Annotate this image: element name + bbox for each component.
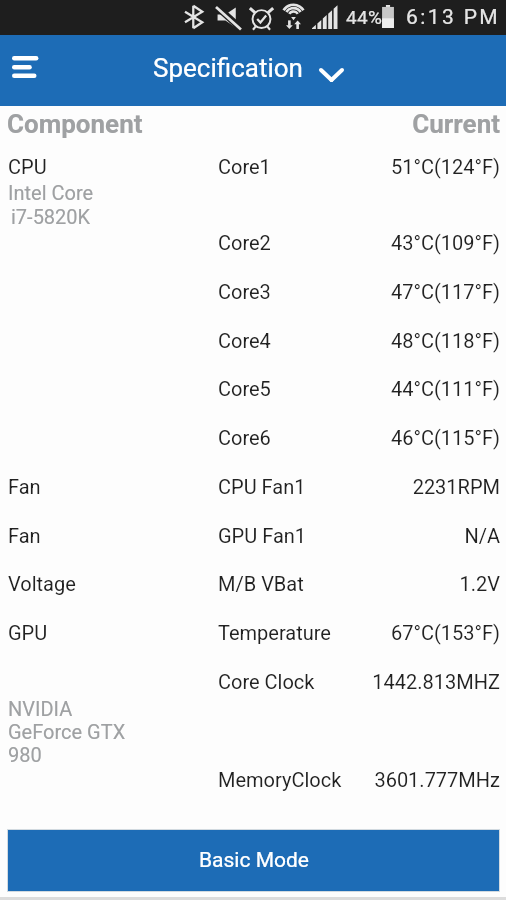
staticText: CPU Fan1 [218, 475, 306, 498]
staticText: Component [7, 109, 143, 139]
staticText: GPU Fan1 [218, 524, 307, 547]
staticText: 1.2V [459, 572, 500, 595]
staticText: Core Clock [218, 670, 315, 693]
staticText: Core2 [218, 231, 271, 254]
staticText: Fan [8, 524, 41, 547]
staticText: GeForce GTX [8, 720, 126, 743]
staticText: Core5 [218, 377, 271, 400]
staticText: 48°C(118°F) [390, 329, 500, 352]
staticText: Core3 [218, 280, 271, 303]
staticText: M/B VBat [218, 572, 304, 595]
staticText: Basic Mode [199, 848, 309, 873]
staticText: 44°C(111°F) [390, 377, 500, 400]
staticText: 43°C(109°F) [390, 231, 500, 254]
staticText: 51°C(124°F) [390, 155, 500, 178]
staticText: 6:13 PM [406, 5, 501, 30]
staticText: MemoryClock [218, 768, 342, 791]
staticText: Specification [153, 53, 303, 83]
staticText: 1442.813MHZ [372, 670, 500, 693]
button[interactable]: Specification [147, 49, 353, 91]
staticText: N/A [464, 524, 500, 547]
staticText: Core4 [218, 329, 271, 352]
staticText: 46°C(115°F) [390, 426, 500, 449]
staticText: Current [412, 109, 500, 139]
staticText: i7-5820K [11, 205, 91, 228]
staticText: Core6 [218, 426, 271, 449]
staticText: Intel Core [8, 181, 94, 204]
staticText: 980 [8, 743, 42, 766]
staticText: 2231RPM [412, 475, 500, 498]
staticText: Voltage [8, 572, 76, 595]
button[interactable]: Basic Mode [8, 830, 499, 891]
staticText: Core1 [218, 155, 271, 178]
staticText: Temperature [218, 621, 331, 644]
staticText: 47°C(117°F) [390, 280, 500, 303]
staticText: GPU [8, 621, 48, 644]
staticText: Fan [8, 475, 41, 498]
staticText: 44% [346, 6, 383, 28]
staticText: 67°C(153°F) [390, 621, 500, 644]
button[interactable]: Open navigation menu [0, 46, 48, 94]
staticText: CPU [8, 155, 47, 178]
staticText: NVIDIA [8, 697, 73, 720]
staticText: 3601.777MHz [374, 768, 500, 791]
